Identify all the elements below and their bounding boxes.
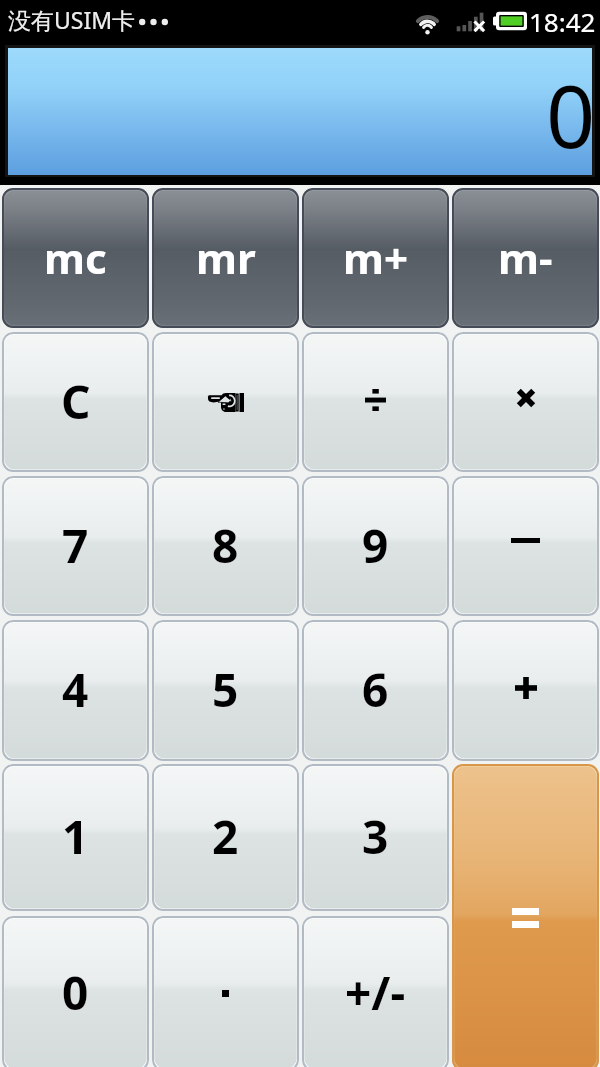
- staticText: C: [61, 370, 91, 433]
- button[interactable]: 3: [302, 764, 449, 911]
- button[interactable]: 7: [2, 476, 149, 616]
- staticText: 18:42: [529, 4, 596, 39]
- staticText: 6: [362, 658, 389, 721]
- button[interactable]: [452, 332, 599, 472]
- button[interactable]: 4: [2, 620, 149, 761]
- staticText: mc: [44, 229, 107, 286]
- staticText: 8: [212, 514, 239, 577]
- staticText: 7: [62, 514, 89, 577]
- staticText: mr: [196, 229, 256, 286]
- button[interactable]: [452, 764, 599, 1067]
- button[interactable]: [152, 916, 299, 1067]
- staticText: 1: [62, 805, 89, 868]
- button[interactable]: mr: [152, 188, 299, 328]
- button[interactable]: 1: [2, 764, 149, 911]
- button[interactable]: 8: [152, 476, 299, 616]
- button[interactable]: 5: [152, 620, 299, 761]
- button[interactable]: C: [2, 332, 149, 472]
- staticText: 没有USIM卡: [8, 4, 136, 35]
- staticText: m+: [343, 229, 408, 286]
- staticText: 9: [362, 514, 389, 577]
- button[interactable]: Backspace: [152, 332, 299, 472]
- button[interactable]: m-: [452, 188, 599, 328]
- staticText: 2: [212, 805, 239, 868]
- button[interactable]: 0: [2, 916, 149, 1067]
- staticText: 4: [62, 658, 89, 721]
- button[interactable]: [452, 620, 599, 761]
- staticText: 5: [212, 658, 239, 721]
- button[interactable]: [452, 476, 599, 616]
- button[interactable]: 6: [302, 620, 449, 761]
- button[interactable]: mc: [2, 188, 149, 328]
- staticText: +/-: [345, 961, 406, 1024]
- button[interactable]: 9: [302, 476, 449, 616]
- staticText: 3: [362, 805, 389, 868]
- staticText: 0: [62, 961, 89, 1024]
- button[interactable]: 2: [152, 764, 299, 911]
- button[interactable]: m+: [302, 188, 449, 328]
- button[interactable]: +/-: [302, 916, 449, 1067]
- staticText: 0: [546, 56, 596, 173]
- button[interactable]: [302, 332, 449, 472]
- staticText: m-: [498, 229, 553, 286]
